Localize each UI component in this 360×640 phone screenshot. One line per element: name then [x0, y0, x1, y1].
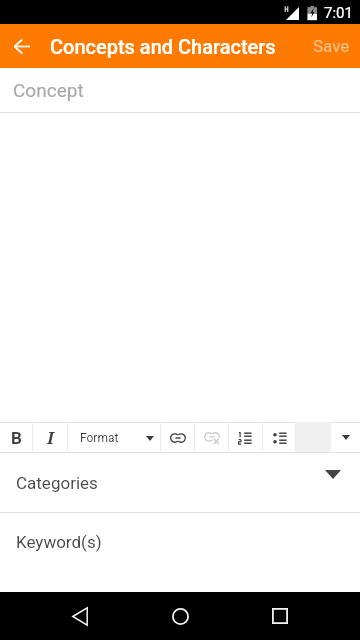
- staticText: Concepts and Characters: [50, 35, 276, 58]
- staticText: Concept: [13, 79, 84, 101]
- button[interactable]: I: [33, 422, 67, 453]
- button[interactable]: [195, 422, 228, 453]
- staticText: I: [47, 426, 54, 449]
- staticText: 7:01: [324, 4, 353, 22]
- button[interactable]: [331, 422, 360, 453]
- staticText: Keyword(s): [16, 532, 102, 552]
- button[interactable]: Categories: [0, 453, 360, 512]
- staticText: B: [11, 428, 22, 448]
- button[interactable]: Home: [156, 592, 204, 640]
- button[interactable]: [161, 422, 194, 453]
- staticText: Save: [313, 36, 350, 56]
- staticText: Categories: [16, 473, 98, 493]
- button[interactable]: Back: [0, 24, 44, 68]
- button[interactable]: Format: [68, 422, 160, 453]
- button[interactable]: B: [0, 422, 32, 453]
- button[interactable]: [229, 422, 262, 453]
- button[interactable]: Save: [299, 24, 360, 68]
- button[interactable]: Recents: [256, 592, 304, 640]
- button[interactable]: [263, 422, 295, 453]
- button[interactable]: Keyword(s): [0, 513, 360, 592]
- button[interactable]: Back: [56, 592, 104, 640]
- staticText: Format: [80, 431, 119, 445]
- button[interactable]: Concept: [0, 68, 360, 112]
